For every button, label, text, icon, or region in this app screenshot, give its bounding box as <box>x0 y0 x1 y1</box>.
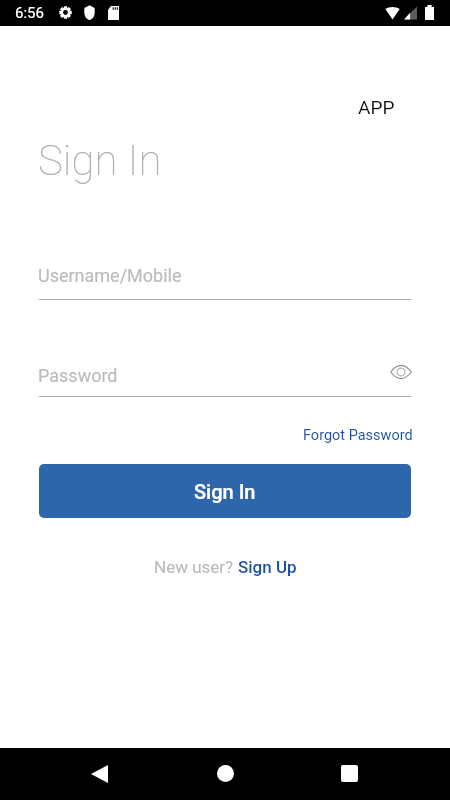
button[interactable]: Sign Up <box>238 557 297 577</box>
button[interactable]: Forgot Password <box>303 427 413 444</box>
staticText: Password <box>38 365 118 386</box>
staticText: Sign In <box>38 136 162 185</box>
staticText: Forgot Password <box>303 427 413 444</box>
button[interactable]: Sign In <box>39 464 411 518</box>
button[interactable]: Back <box>69 750 129 798</box>
button[interactable]: Show password <box>389 360 413 384</box>
staticText: Sign In <box>194 480 256 503</box>
staticText: Username/Mobile <box>38 265 182 286</box>
button[interactable]: Recent apps <box>319 750 379 798</box>
staticText: APP <box>358 96 395 118</box>
staticText: New user? <box>154 557 238 577</box>
button[interactable]: APP <box>358 96 395 118</box>
button[interactable]: Home <box>195 750 255 798</box>
staticText: 6:56 <box>15 4 44 22</box>
